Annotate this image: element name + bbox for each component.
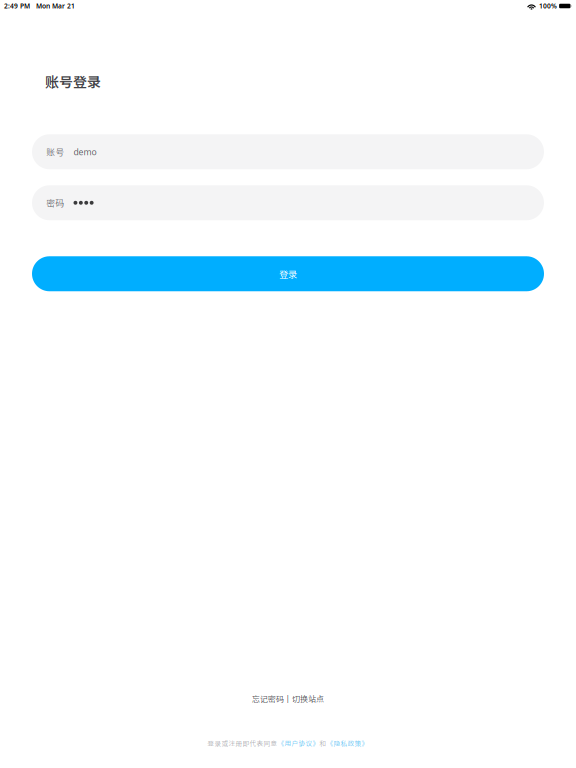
button[interactable]: 登录 bbox=[32, 256, 544, 291]
staticText: 和 bbox=[319, 738, 326, 748]
staticText: 2:49 PM bbox=[4, 1, 30, 11]
staticText: 账号 bbox=[46, 145, 64, 158]
staticText: demo bbox=[73, 146, 96, 158]
staticText: 账号登录 bbox=[45, 71, 101, 91]
staticText: 《用户协议》 bbox=[277, 738, 319, 748]
staticText: 忘记密码 bbox=[252, 693, 284, 704]
staticText: 丨 bbox=[284, 693, 292, 704]
staticText: 《隐私政策》 bbox=[326, 738, 368, 748]
staticText: 密码 bbox=[46, 196, 64, 209]
button[interactable]: 《隐私政策》 bbox=[326, 738, 368, 748]
staticText: 登录 bbox=[279, 267, 297, 280]
staticText: 切换站点 bbox=[292, 693, 324, 704]
staticText: 登录或注册即代表同意 bbox=[207, 738, 277, 748]
button[interactable]: 切换站点 bbox=[292, 693, 324, 704]
staticText: Mon Mar 21 bbox=[36, 1, 75, 11]
button[interactable]: 忘记密码 bbox=[252, 693, 284, 704]
button[interactable]: 《用户协议》 bbox=[277, 738, 319, 748]
staticText: 100% bbox=[539, 1, 557, 11]
